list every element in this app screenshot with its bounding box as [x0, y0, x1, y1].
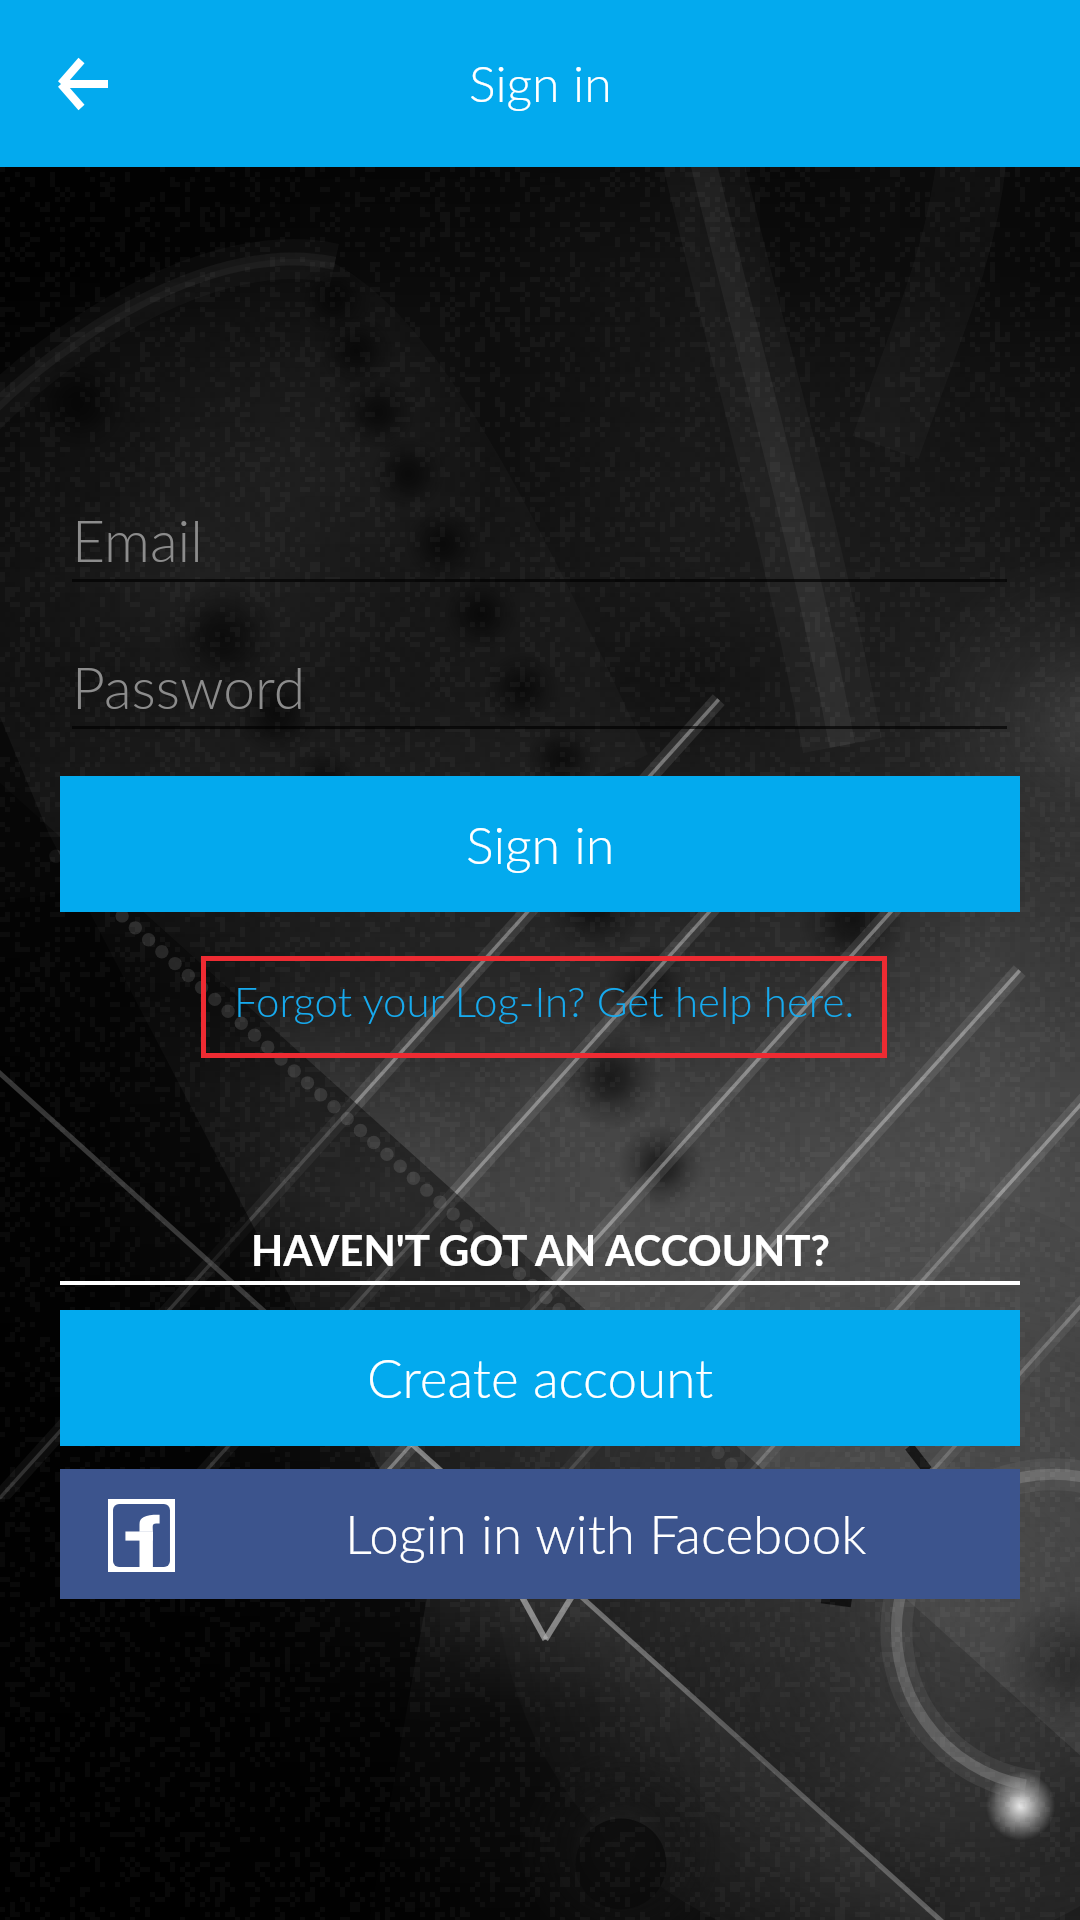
staticText: HAVEN'T GOT AN ACCOUNT?	[251, 1225, 830, 1275]
button[interactable]: Email	[0, 498, 1080, 582]
button[interactable]: Password	[0, 645, 1080, 729]
button[interactable]: Back	[0, 0, 150, 167]
button[interactable]: Create account	[60, 1310, 1020, 1446]
button[interactable]: Sign in	[60, 776, 1020, 912]
staticText: Create account	[367, 1346, 714, 1410]
staticText: Email	[72, 506, 203, 574]
button[interactable]: Login in with Facebook	[60, 1469, 1020, 1599]
staticText: Forgot your Log-In? Get help here.	[234, 976, 855, 1026]
staticText: Login in with Facebook	[345, 1502, 867, 1566]
staticText: Sign in	[466, 813, 615, 875]
button[interactable]: Forgot your Log-In? Get help here.	[201, 956, 887, 1058]
staticText: Sign in	[469, 53, 612, 113]
staticText: Password	[72, 653, 306, 721]
